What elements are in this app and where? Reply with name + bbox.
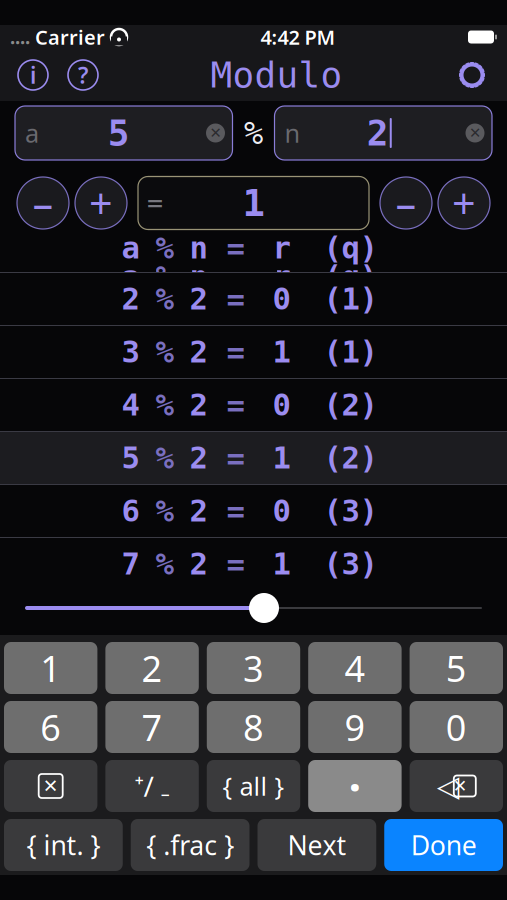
- staticText: (2): [323, 441, 377, 475]
- staticText: 4:42 PM: [260, 24, 335, 50]
- staticText: Next: [287, 827, 346, 863]
- button[interactable]: { int. }: [4, 819, 123, 871]
- staticText: ✕: [469, 125, 481, 141]
- staticText: =: [226, 282, 244, 316]
- staticText: %: [155, 547, 173, 581]
- staticText: 2: [142, 644, 163, 692]
- staticText: (1): [323, 335, 377, 369]
- staticText: 0: [446, 703, 467, 751]
- staticText: (3): [323, 494, 377, 528]
- button[interactable]: Next: [257, 819, 376, 871]
- staticText: ·: [348, 756, 361, 816]
- staticText: 2: [189, 388, 207, 422]
- button[interactable]: Decimal point: [308, 760, 402, 812]
- button[interactable]: 3: [0, 326, 507, 378]
- button[interactable]: Range slider: [242, 586, 286, 630]
- staticText: Done: [411, 827, 477, 863]
- staticText: { int. }: [26, 827, 100, 863]
- staticText: a: [25, 116, 39, 150]
- staticText: 2: [189, 547, 207, 581]
- button[interactable]: 2: [0, 273, 507, 325]
- button[interactable]: 6: [4, 701, 97, 753]
- button[interactable]: 9: [308, 701, 402, 753]
- button[interactable]: Decrease n: [377, 171, 435, 235]
- staticText: 5: [446, 644, 467, 692]
- button[interactable]: 5: [410, 642, 503, 694]
- staticText: 2: [189, 441, 207, 475]
- staticText: ?: [78, 60, 88, 90]
- staticText: 7: [121, 547, 139, 581]
- staticText: { all }: [222, 769, 284, 803]
- staticText: %: [155, 259, 173, 294]
- button[interactable]: Settings: [445, 49, 499, 101]
- button[interactable]: Clear entry: [4, 760, 97, 812]
- button[interactable]: 4: [308, 642, 402, 694]
- staticText: +: [452, 176, 476, 230]
- staticText: 8: [243, 703, 264, 751]
- button[interactable]: Increase n: [435, 171, 493, 235]
- staticText: 1: [272, 335, 290, 369]
- staticText: 2: [189, 335, 207, 369]
- staticText: ....: [10, 25, 30, 49]
- button[interactable]: Increase a: [72, 171, 130, 235]
- staticText: ◁: [437, 769, 460, 803]
- staticText: %: [155, 441, 173, 475]
- staticText: 2: [121, 282, 139, 316]
- button[interactable]: Done: [384, 819, 503, 871]
- staticText: –: [395, 176, 416, 230]
- staticText: 5: [108, 113, 130, 153]
- staticText: %: [155, 231, 173, 265]
- staticText: 2: [189, 494, 207, 528]
- button[interactable]: { all }: [207, 760, 300, 812]
- button[interactable]: Clear n: [458, 111, 492, 155]
- staticText: i: [30, 60, 36, 90]
- staticText: %: [244, 115, 263, 151]
- staticText: n: [284, 116, 300, 150]
- button[interactable]: 7: [0, 538, 507, 590]
- staticText: a: [121, 259, 139, 294]
- staticText: 2: [189, 282, 207, 316]
- staticText: (q): [323, 259, 377, 294]
- button[interactable]: Decrease a: [14, 171, 72, 235]
- staticText: %: [155, 494, 173, 528]
- button[interactable]: Toggle sign: [105, 760, 199, 812]
- staticText: (2): [323, 388, 377, 422]
- button[interactable]: Help: [58, 49, 108, 101]
- button[interactable]: 2: [105, 642, 199, 694]
- staticText: %: [155, 282, 173, 316]
- staticText: ✕: [43, 775, 59, 797]
- staticText: (1): [323, 282, 377, 316]
- button[interactable]: Clear a: [198, 111, 232, 155]
- staticText: =: [226, 231, 244, 265]
- button[interactable]: 4: [0, 379, 507, 431]
- button[interactable]: 5: [0, 432, 507, 484]
- button[interactable]: 1: [4, 642, 97, 694]
- staticText: 6: [40, 703, 61, 751]
- staticText: ✕: [453, 776, 468, 796]
- button[interactable]: 8: [207, 701, 300, 753]
- staticText: =: [226, 547, 244, 581]
- button[interactable]: 3: [207, 642, 300, 694]
- staticText: 1: [272, 441, 290, 475]
- staticText: 9: [344, 703, 365, 751]
- staticText: 0: [272, 282, 290, 316]
- staticText: Carrier: [35, 24, 105, 50]
- staticText: ⁺/ ₋: [135, 767, 170, 805]
- staticText: =: [226, 441, 244, 475]
- staticText: =: [226, 335, 244, 369]
- staticText: 6: [121, 494, 139, 528]
- staticText: %: [155, 335, 173, 369]
- button[interactable]: Backspace: [410, 760, 503, 812]
- button[interactable]: Info: [8, 49, 58, 101]
- button[interactable]: 6: [0, 485, 507, 537]
- button[interactable]: 0: [410, 701, 503, 753]
- staticText: a: [121, 231, 139, 265]
- staticText: (3): [323, 547, 377, 581]
- staticText: =: [226, 388, 244, 422]
- button[interactable]: 7: [105, 701, 199, 753]
- staticText: 2: [367, 113, 389, 153]
- staticText: =: [226, 494, 244, 528]
- staticText: =: [226, 259, 244, 294]
- button[interactable]: { .frac }: [131, 819, 250, 871]
- staticText: 4: [121, 388, 139, 422]
